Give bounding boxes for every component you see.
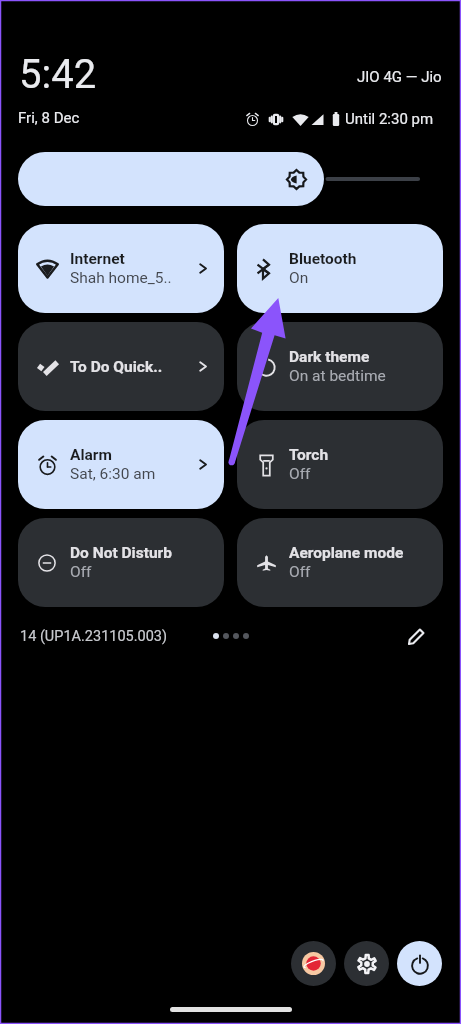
- staticText: 14 (UP1A.231105.003): [20, 628, 168, 645]
- staticText: Internet: [70, 250, 125, 268]
- button[interactable]: Brightness: [18, 152, 419, 206]
- staticText: Alarm: [70, 446, 112, 464]
- staticText: Off: [289, 563, 311, 581]
- button[interactable]: Do Not Disturb: [18, 518, 224, 607]
- staticText: Shah home_5..: [70, 269, 172, 287]
- button[interactable]: Power: [397, 941, 442, 986]
- staticText: On at bedtime: [289, 367, 386, 385]
- staticText: On: [289, 269, 309, 287]
- button[interactable]: Aeroplane mode: [237, 518, 443, 607]
- staticText: Sat, 6:30 am: [70, 465, 156, 483]
- staticText: Until 2:30 pm: [345, 110, 434, 128]
- button[interactable]: Internet: [18, 224, 224, 313]
- button[interactable]: User account: [291, 941, 336, 986]
- button[interactable]: Alarm: [18, 420, 224, 509]
- staticText: Torch: [289, 446, 329, 464]
- button[interactable]: To Do Quick..: [18, 322, 224, 411]
- staticText: 5:42: [19, 51, 97, 98]
- button[interactable]: Torch: [237, 420, 443, 509]
- staticText: Aeroplane mode: [289, 544, 404, 562]
- staticText: Off: [289, 465, 311, 483]
- staticText: Bluetooth: [289, 250, 357, 268]
- staticText: Do Not Disturb: [70, 544, 172, 562]
- staticText: Off: [70, 563, 92, 581]
- button[interactable]: Dark theme: [237, 322, 443, 411]
- staticText: Fri, 8 Dec: [18, 109, 80, 127]
- staticText: To Do Quick..: [70, 358, 163, 376]
- button[interactable]: Settings: [344, 941, 389, 986]
- staticText: Dark theme: [289, 348, 370, 366]
- button[interactable]: Edit tiles: [401, 621, 431, 651]
- button[interactable]: Bluetooth: [237, 224, 443, 313]
- staticText: JIO 4G — Jio: [357, 68, 442, 86]
